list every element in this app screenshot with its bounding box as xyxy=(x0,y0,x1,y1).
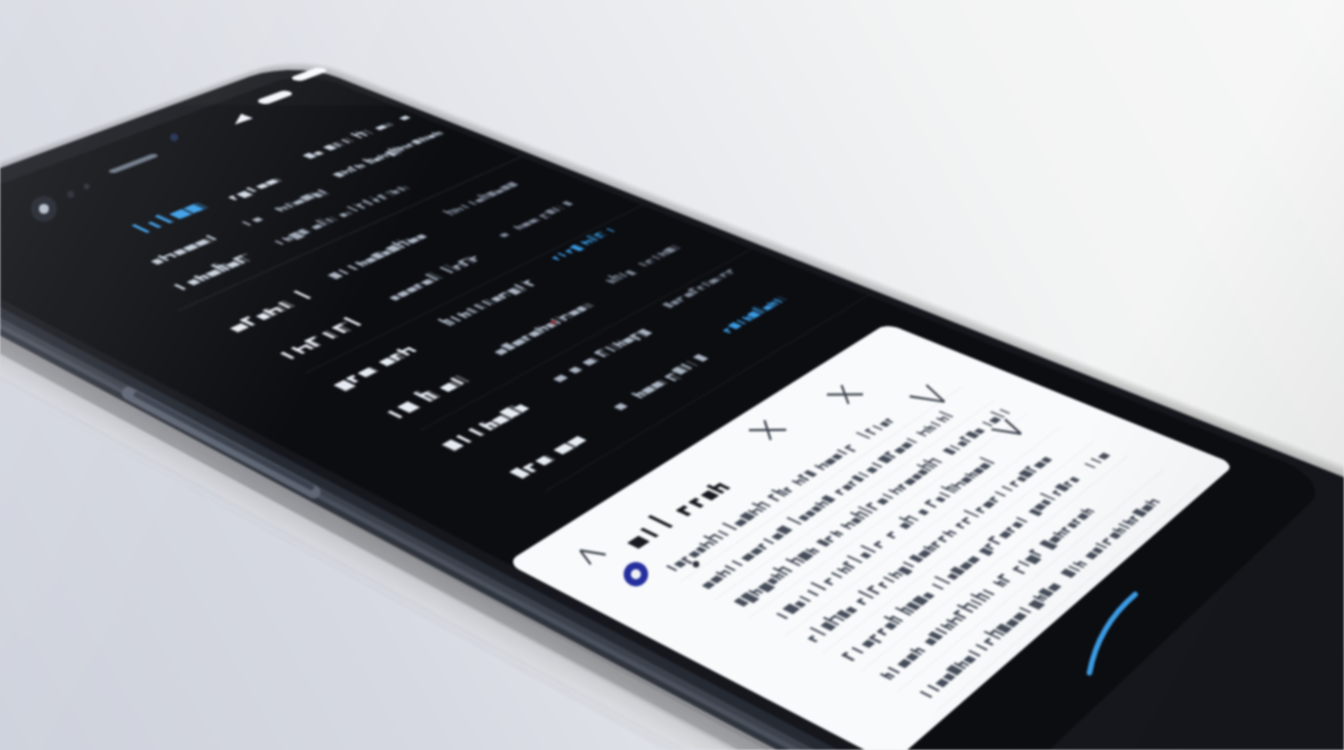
button[interactable]: Android phone on a desk xyxy=(0,0,1344,750)
